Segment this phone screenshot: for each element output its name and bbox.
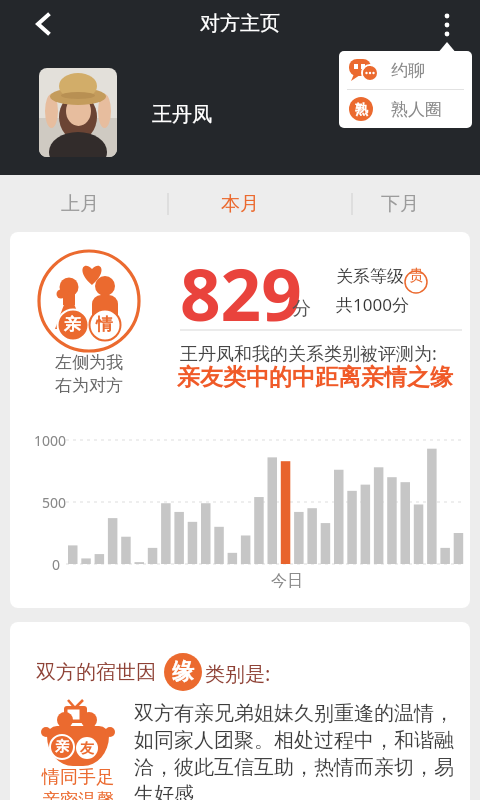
button[interactable]: 熟 bbox=[339, 90, 472, 128]
button[interactable]: 约聊 bbox=[339, 51, 472, 89]
staticText: 829 bbox=[180, 245, 302, 342]
staticText: 王丹凤和我的关系类别被评测为: bbox=[180, 341, 437, 366]
staticText: 500 bbox=[42, 493, 67, 512]
staticText: 亲友类中的中距离亲情之缘 bbox=[177, 363, 453, 392]
staticText: 熟 bbox=[355, 101, 368, 117]
button[interactable]: 本月 bbox=[160, 175, 320, 232]
staticText: 左侧为我 bbox=[39, 352, 139, 373]
staticText: 共1000分 bbox=[336, 293, 409, 316]
staticText: 今日 bbox=[271, 571, 303, 591]
staticText: 约聊 bbox=[391, 60, 425, 81]
staticText: 亲 bbox=[64, 314, 81, 335]
button[interactable]: 上月 bbox=[0, 175, 160, 232]
staticText: 情同手足 bbox=[42, 766, 114, 789]
button[interactable] bbox=[39, 68, 117, 157]
button[interactable]: 下月 bbox=[320, 175, 480, 232]
staticText: 下月 bbox=[320, 192, 480, 216]
staticText: 情 bbox=[96, 314, 113, 335]
staticText: 亲 bbox=[55, 738, 69, 756]
staticText: 本月 bbox=[160, 192, 320, 216]
staticText: 双方的宿世因 bbox=[36, 660, 156, 685]
button[interactable] bbox=[24, 4, 64, 44]
button[interactable] bbox=[430, 2, 466, 46]
staticText: 关系等级 bbox=[336, 266, 404, 287]
staticText: 0 bbox=[52, 555, 61, 574]
staticText: 类别是: bbox=[205, 660, 271, 687]
staticText: 缘 bbox=[172, 658, 194, 686]
staticText: 右为对方 bbox=[39, 375, 139, 396]
staticText: 分 bbox=[292, 297, 311, 321]
staticText: 王丹凤 bbox=[152, 102, 212, 127]
staticText: 友 bbox=[80, 740, 94, 758]
staticText: 双方有亲兄弟姐妹久别重逢的温情， 如同家人团聚。相处过程中，和谐融 洽，彼此互信… bbox=[134, 701, 464, 800]
staticText: 1000 bbox=[34, 431, 67, 450]
staticText: 贵 bbox=[409, 266, 424, 285]
staticText: 上月 bbox=[0, 192, 160, 216]
staticText: 熟人圈 bbox=[391, 99, 442, 120]
staticText: 对方主页 bbox=[0, 11, 480, 36]
staticText: 亲密温馨 bbox=[42, 789, 114, 800]
